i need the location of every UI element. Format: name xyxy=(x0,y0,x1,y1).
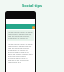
staticText: Lorem ipsum dolor sit amet consectetur a… xyxy=(8,43,33,63)
staticText: Lorem ipsum dolor sit amet consectetur a… xyxy=(8,31,33,40)
button[interactable] xyxy=(6,24,35,29)
button[interactable]: Lorem ipsum dolor sit amet consectetur a… xyxy=(7,30,34,41)
button[interactable]: Add xyxy=(32,26,35,29)
staticText: Social tips xyxy=(22,3,43,8)
